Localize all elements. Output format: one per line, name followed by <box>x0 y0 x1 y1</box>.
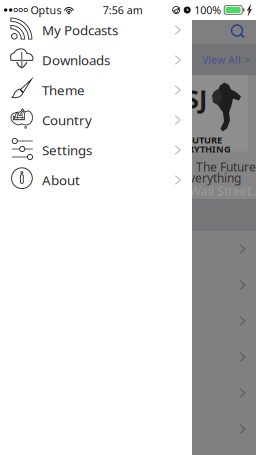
staticText: 100% <box>194 3 221 17</box>
staticText: My Podcasts <box>42 21 118 39</box>
button[interactable]: Theme <box>0 75 192 105</box>
staticText: verything <box>189 170 241 186</box>
staticText: Downloads <box>42 51 110 69</box>
staticText: The Future <box>196 159 256 175</box>
staticText: 7:56 am <box>103 3 143 17</box>
staticText: Wall Street... <box>190 183 256 199</box>
staticText: About <box>42 171 80 189</box>
staticText: View All > <box>202 52 250 67</box>
button[interactable]: About <box>0 165 192 195</box>
staticText: Country <box>42 111 92 129</box>
staticText: ERYTHING <box>183 142 231 155</box>
staticText: Theme <box>42 81 85 99</box>
staticText: Settings <box>42 141 92 159</box>
staticText: FUTURE <box>187 133 222 146</box>
button[interactable]: Country <box>0 105 192 135</box>
button[interactable]: Settings <box>0 135 192 165</box>
button[interactable]: My Podcasts <box>0 15 192 45</box>
staticText: SJ <box>185 81 207 116</box>
button[interactable]: Downloads <box>0 45 192 75</box>
staticText: Optus <box>30 3 61 17</box>
button[interactable]: Search <box>231 24 246 39</box>
